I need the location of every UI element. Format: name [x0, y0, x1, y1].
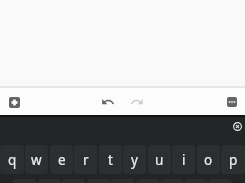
button[interactable]: Redo: [130, 95, 144, 109]
button[interactable]: w: [25, 145, 48, 174]
button[interactable]: u: [148, 145, 171, 174]
button[interactable]: q: [0, 145, 24, 174]
button[interactable]: Hide keyboard: [233, 122, 242, 131]
button[interactable]: p: [221, 145, 245, 174]
staticText: e: [58, 151, 66, 169]
staticText: w: [31, 151, 42, 169]
staticText: u: [155, 151, 164, 169]
staticText: q: [8, 151, 17, 169]
staticText: i: [182, 151, 186, 169]
button[interactable]: r: [74, 145, 97, 174]
button[interactable]: e: [50, 145, 73, 174]
button[interactable]: More options: [227, 97, 237, 107]
staticText: y: [131, 151, 138, 169]
button[interactable]: Add: [9, 97, 20, 108]
staticText: o: [204, 151, 213, 169]
staticText: t: [108, 151, 113, 169]
staticText: r: [83, 151, 89, 169]
staticText: p: [229, 151, 238, 169]
button[interactable]: i: [172, 145, 195, 174]
button[interactable]: o: [197, 145, 220, 174]
button[interactable]: Undo: [101, 95, 115, 109]
button[interactable]: y: [123, 145, 146, 174]
button[interactable]: t: [99, 145, 122, 174]
